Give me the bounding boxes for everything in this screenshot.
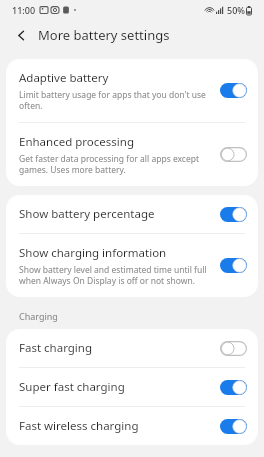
button[interactable]: Fast wireless charging [6,407,258,445]
staticText: Show battery level and estimated time un… [19,264,212,286]
staticText: Enhanced processing [19,134,134,150]
staticText: More battery settings [38,26,170,44]
button[interactable]: Enhanced processing [6,123,258,186]
button[interactable]: Show battery percentage [6,195,258,233]
button[interactable]: Toggle on [220,258,247,273]
button[interactable]: Toggle off [220,147,247,162]
button[interactable]: Show charging information [6,234,258,297]
button[interactable]: Adaptive battery [6,59,258,122]
button[interactable]: Toggle off [220,341,247,356]
staticText: Fast charging [19,340,93,356]
button[interactable]: Toggle on [220,419,247,434]
staticText: Fast wireless charging [19,418,139,434]
staticText: Show battery percentage [19,206,155,222]
button[interactable]: Toggle on [220,207,247,222]
button[interactable]: Toggle on [220,83,247,98]
staticText: 50% [227,4,245,16]
staticText: 11:00 [12,4,36,16]
staticText: Charging [19,310,58,322]
staticText: Get faster data processing for all apps … [19,153,212,175]
staticText: Show charging information [19,245,167,261]
button[interactable]: Fast charging [6,329,258,367]
staticText: Super fast charging [19,379,125,395]
staticText: Limit battery usage for apps that you do… [19,89,212,111]
button[interactable]: Back [11,25,31,45]
button[interactable]: Super fast charging [6,368,258,406]
staticText: Adaptive battery [19,70,109,86]
button[interactable]: Toggle on [220,380,247,395]
